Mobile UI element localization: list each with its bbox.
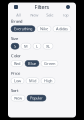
- button[interactable]: Mid: [26, 78, 39, 84]
- button[interactable]: Everything: [11, 26, 35, 32]
- staticText: Adidas: [56, 26, 68, 31]
- staticText: High: [44, 78, 52, 83]
- staticText: Filters: [34, 3, 49, 11]
- staticText: Color: [11, 53, 21, 58]
- staticText: S: [14, 43, 16, 49]
- button[interactable]: New: [11, 95, 25, 101]
- staticText: XL: [46, 43, 50, 49]
- button[interactable]: Red: [11, 60, 23, 66]
- button[interactable]: Sale: [42, 12, 57, 18]
- staticText: Size: [11, 36, 18, 41]
- button[interactable]: Profile: [63, 3, 73, 11]
- staticText: M: [24, 43, 28, 49]
- staticText: Red: [14, 61, 20, 66]
- staticText: Top: [62, 12, 68, 18]
- button[interactable]: All: [11, 12, 26, 18]
- button[interactable]: Menu: [11, 3, 21, 11]
- staticText: Sale: [46, 12, 53, 18]
- staticText: Popular: [30, 95, 43, 101]
- button[interactable]: Green: [41, 60, 58, 66]
- button[interactable]: Adidas: [53, 26, 71, 32]
- staticText: Sort: [11, 88, 18, 93]
- staticText: Nike: [40, 26, 48, 31]
- staticText: Mid: [29, 78, 36, 83]
- button[interactable]: Nike: [37, 26, 51, 32]
- button[interactable]: XL: [43, 43, 53, 49]
- staticText: Blue: [28, 61, 36, 66]
- staticText: Brand: [11, 18, 22, 24]
- staticText: L: [36, 43, 38, 49]
- staticText: New: [30, 12, 38, 18]
- button[interactable]: L: [33, 43, 41, 49]
- button[interactable]: Low: [11, 78, 24, 84]
- button[interactable]: Top: [57, 12, 73, 18]
- staticText: Green: [44, 61, 55, 66]
- button[interactable]: M: [21, 43, 31, 49]
- staticText: All: [16, 12, 21, 18]
- staticText: Everything: [14, 26, 32, 31]
- button[interactable]: Blue: [25, 60, 39, 66]
- staticText: New: [14, 95, 22, 101]
- button[interactable]: High: [41, 78, 55, 84]
- button[interactable]: New: [26, 12, 42, 18]
- staticText: Low: [14, 78, 21, 83]
- staticText: Price: [11, 70, 20, 76]
- button[interactable]: S: [11, 43, 19, 49]
- button[interactable]: Popular: [27, 95, 46, 101]
